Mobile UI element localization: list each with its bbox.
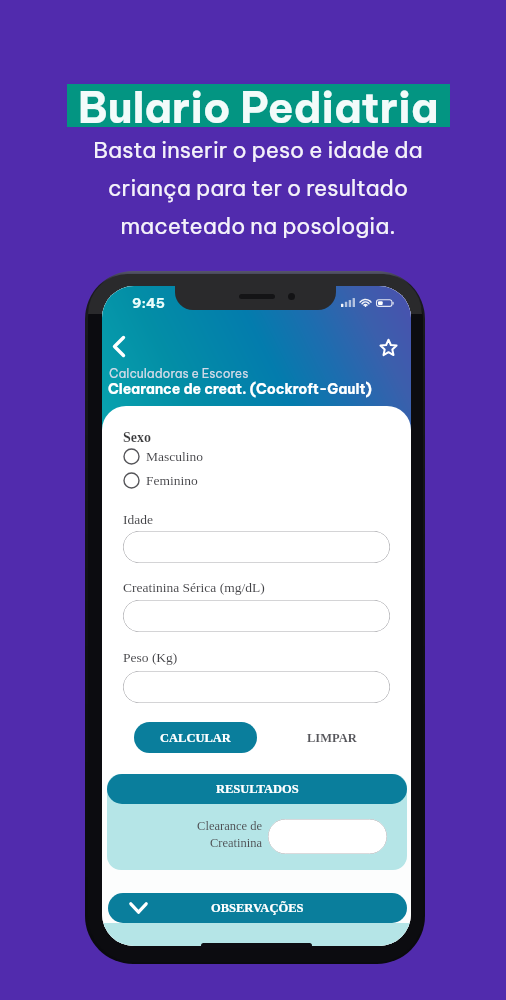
button[interactable]: OBSERVAÇÕES <box>108 893 407 923</box>
button[interactable]: CALCULAR <box>134 722 257 753</box>
button[interactable]: Favorite <box>370 329 406 365</box>
staticText: Clearance de creat. (Cockroft-Gault) <box>108 380 372 397</box>
button[interactable]: LIMPAR <box>291 722 373 753</box>
staticText: Peso (Kg) <box>123 650 178 665</box>
button[interactable]: Idade <box>123 531 390 563</box>
staticText: Feminino <box>146 473 198 488</box>
staticText: Calculadoras e Escores <box>109 366 249 381</box>
staticText: Masculino <box>146 449 203 464</box>
button[interactable]: Feminino <box>123 472 198 489</box>
staticText: RESULTADOS <box>216 782 299 796</box>
staticText: LIMPAR <box>307 731 357 745</box>
button[interactable]: RESULTADOS <box>107 774 407 804</box>
staticText: Idade <box>123 512 153 527</box>
button[interactable]: Masculino <box>123 448 203 465</box>
button[interactable]: Back <box>102 328 137 364</box>
staticText: OBSERVAÇÕES <box>211 901 304 915</box>
staticText: 9:45 <box>132 294 165 311</box>
staticText: Bulario Pediatria <box>78 81 439 124</box>
button[interactable]: Peso (Kg) <box>123 671 390 703</box>
staticText: Basta inserir o peso e idade da criança … <box>63 136 453 240</box>
staticText: Sexo <box>123 430 151 446</box>
staticText: CALCULAR <box>160 731 231 745</box>
staticText: Clearance de Creatinina <box>172 819 262 850</box>
staticText: Creatinina Sérica (mg/dL) <box>123 580 265 595</box>
button[interactable]: Creatinina Sérica (mg/dL) <box>123 600 390 632</box>
